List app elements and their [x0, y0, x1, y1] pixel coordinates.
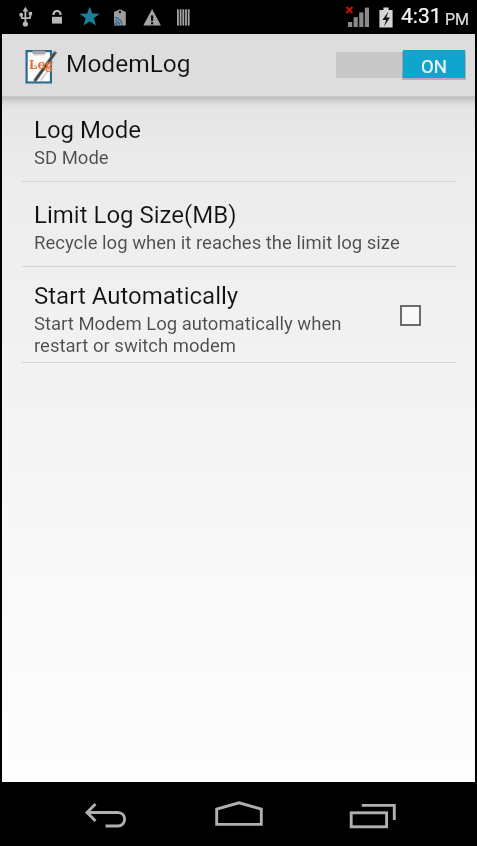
button[interactable]: Back: [40, 782, 172, 846]
staticText: Limit Log Size(MB): [34, 201, 237, 229]
staticText: Start Modem Log automatically when: [34, 313, 342, 335]
button[interactable]: Home: [174, 782, 304, 846]
button[interactable]: ON: [336, 50, 465, 81]
button[interactable]: Recent apps: [307, 782, 437, 846]
staticText: PM: [445, 10, 470, 29]
button[interactable]: Limit Log Size(MB): [0, 182, 477, 267]
staticText: Start Automatically: [34, 282, 239, 310]
button[interactable]: Start Automatically: [0, 267, 477, 363]
staticText: SD Mode: [34, 147, 109, 169]
staticText: Recycle log when it reaches the limit lo…: [34, 232, 400, 254]
staticText: Log: [29, 55, 53, 73]
staticText: ON: [421, 56, 447, 78]
staticText: restart or switch modem: [34, 335, 237, 357]
staticText: Log Mode: [34, 116, 141, 144]
staticText: ModemLog: [66, 49, 191, 78]
button[interactable]: Log Mode: [0, 100, 477, 182]
staticText: 4:31: [401, 4, 442, 29]
